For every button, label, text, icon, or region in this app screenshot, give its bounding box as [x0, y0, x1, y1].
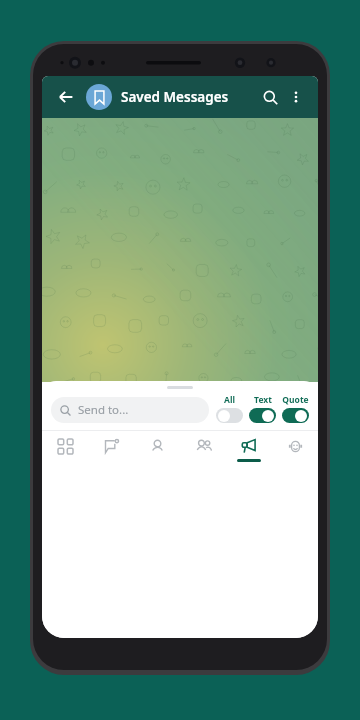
button[interactable]: More options	[284, 85, 308, 109]
button[interactable]: Bots	[272, 431, 318, 469]
staticText: Quote	[282, 394, 309, 406]
button[interactable]: Search	[256, 83, 284, 111]
staticText: Text	[254, 394, 272, 406]
button[interactable]: Groups	[180, 431, 226, 469]
staticText: Send to...	[78, 402, 129, 418]
button[interactable]: Contacts	[134, 431, 180, 469]
button[interactable]: Send to...	[51, 397, 209, 423]
button[interactable]: Apps	[42, 431, 88, 469]
button[interactable]: Back	[52, 83, 80, 111]
button[interactable]: Quote	[282, 394, 309, 423]
staticText: All	[224, 394, 235, 406]
button[interactable]	[86, 84, 112, 110]
staticText: Saved Messages	[121, 88, 229, 106]
button[interactable]: All	[216, 394, 243, 423]
button[interactable]: Text	[249, 394, 276, 423]
button[interactable]: Chats	[88, 431, 134, 469]
button[interactable]: Channels	[226, 431, 272, 469]
